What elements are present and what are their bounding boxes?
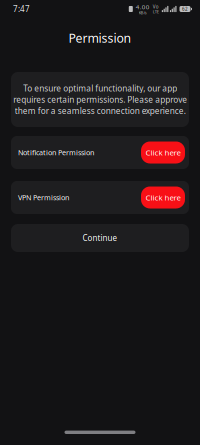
staticText: LTE xyxy=(153,9,159,14)
staticText: 4.00 xyxy=(136,3,150,11)
staticText: Vo xyxy=(153,4,159,10)
staticText: Notification Permission xyxy=(18,148,94,157)
staticText: Click here xyxy=(145,192,180,203)
staticText: Click here xyxy=(145,147,180,158)
staticText: To ensure optimal functionality, our app… xyxy=(13,83,187,116)
button[interactable]: Continue xyxy=(0,224,200,252)
staticText: KB/s xyxy=(139,10,147,15)
button[interactable]: Notification Permission xyxy=(0,136,200,169)
button[interactable]: VPN Permission xyxy=(0,181,200,214)
staticText: Permission xyxy=(68,30,131,46)
staticText: 7:47 xyxy=(13,4,30,14)
staticText: VPN Permission xyxy=(18,193,69,202)
staticText: 62 xyxy=(182,6,188,12)
staticText: Continue xyxy=(82,233,117,243)
